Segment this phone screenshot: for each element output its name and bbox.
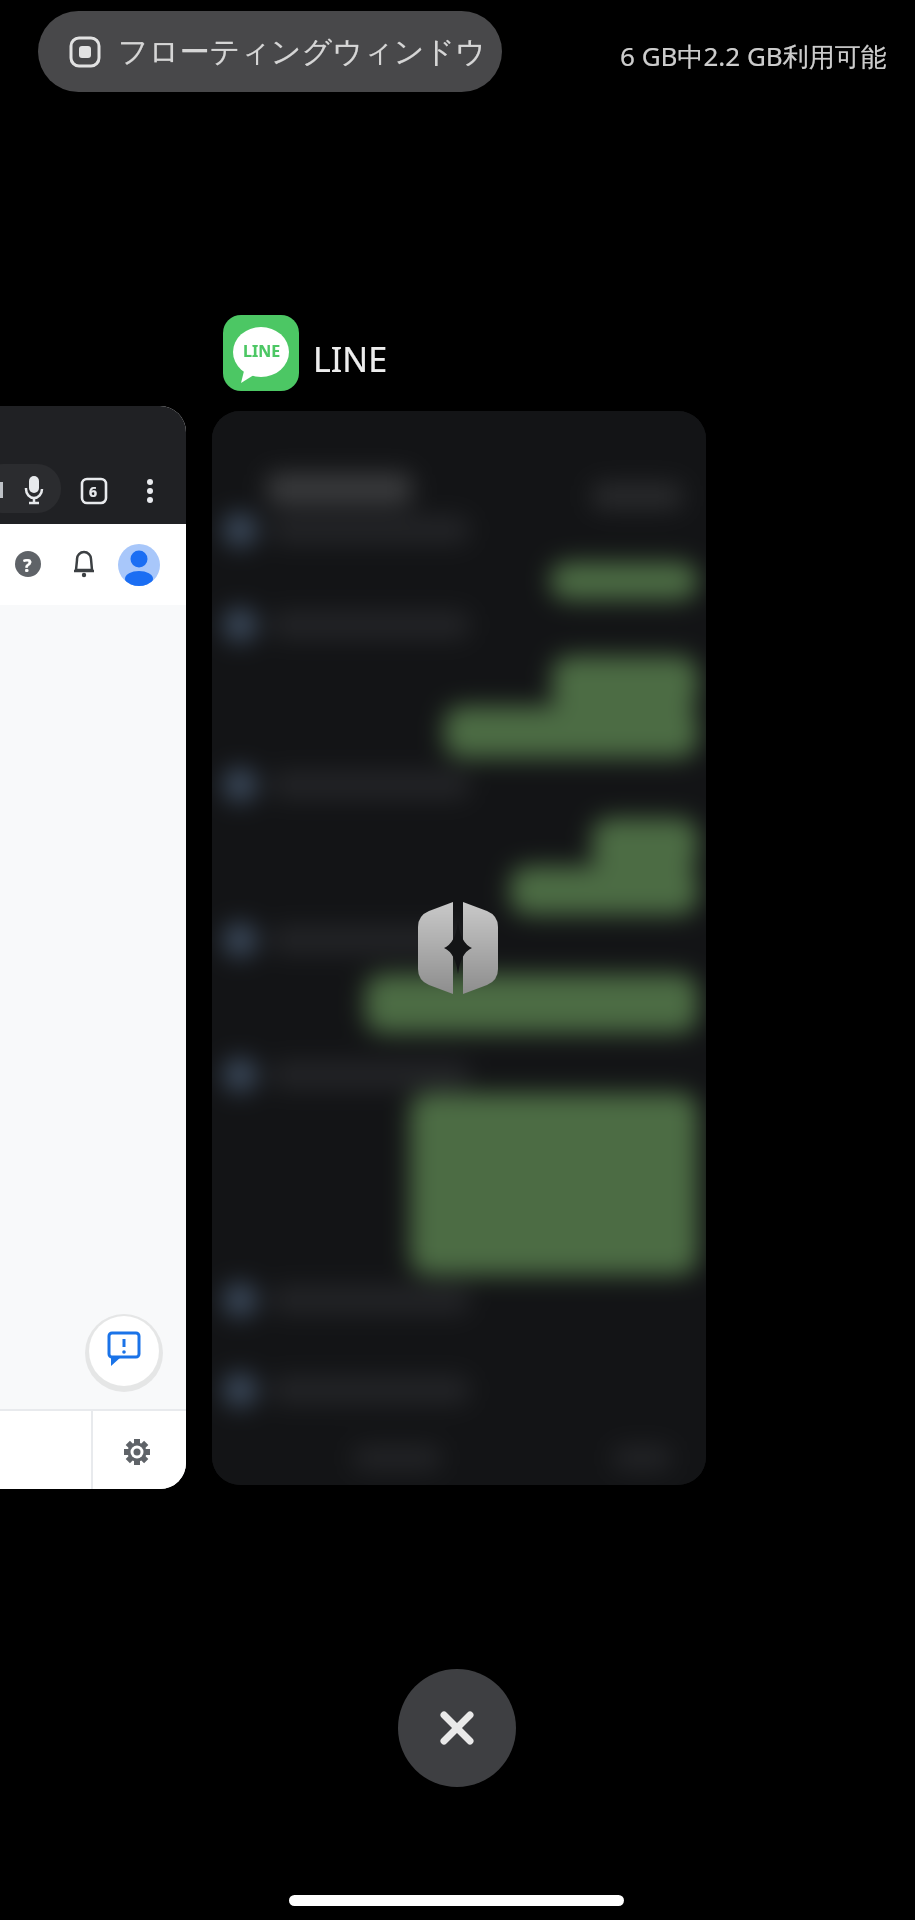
staticText: LINE (313, 336, 388, 382)
button[interactable] (212, 411, 706, 1485)
staticText: 6 GB中2.2 GB利用可能 (620, 38, 887, 74)
button[interactable]: 6 (0, 406, 186, 1489)
staticText: 6 (89, 482, 98, 501)
button[interactable]: フローティングウィンドウ (38, 11, 502, 92)
staticText: フローティングウィンドウ (118, 33, 486, 71)
staticText: ? (23, 553, 32, 578)
staticText: LINE (243, 340, 281, 362)
button[interactable] (398, 1669, 516, 1787)
button[interactable]: LINE (223, 315, 299, 391)
